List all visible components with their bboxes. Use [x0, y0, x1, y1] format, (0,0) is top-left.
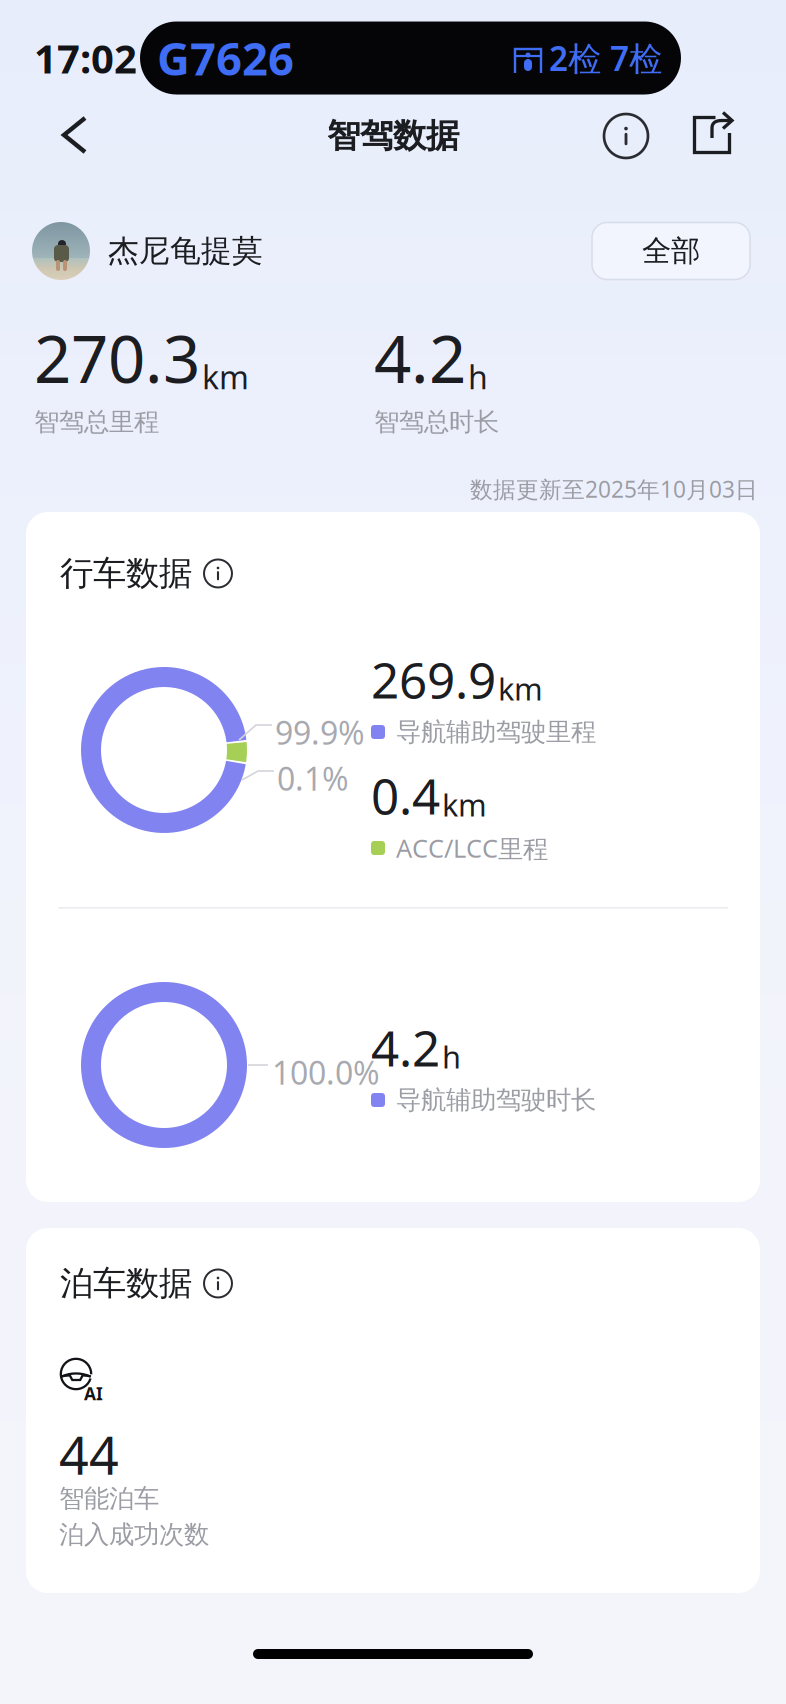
- staticText: 泊入成功次数: [59, 1519, 209, 1550]
- staticText: G7626: [157, 28, 294, 88]
- staticText: 导航辅助驾驶时长: [396, 1084, 596, 1115]
- button[interactable]: Back: [52, 113, 98, 157]
- staticText: 泊车数据: [60, 1263, 192, 1304]
- staticText: 99.9%: [275, 711, 365, 753]
- staticText: 导航辅助驾驶里程: [396, 716, 596, 747]
- button[interactable]: 全部: [592, 222, 750, 279]
- staticText: h: [468, 355, 488, 398]
- staticText: 100.0%: [272, 1051, 380, 1093]
- staticText: 智能泊车: [59, 1483, 159, 1514]
- staticText: 0.4: [371, 762, 440, 828]
- staticText: 智驾总里程: [34, 406, 159, 437]
- staticText: h: [442, 1036, 461, 1077]
- staticText: 杰尼龟提莫: [108, 232, 263, 270]
- staticText: AI: [84, 1382, 103, 1405]
- staticText: 数据更新至2025年10月03日: [470, 474, 758, 504]
- button[interactable]: About 行车数据: [204, 559, 232, 587]
- staticText: 4.2: [371, 1014, 440, 1080]
- staticText: 行车数据: [60, 553, 192, 594]
- staticText: 270.3: [34, 314, 200, 401]
- staticText: km: [498, 668, 543, 709]
- staticText: ACC/LCC里程: [396, 831, 548, 865]
- staticText: 17:02: [34, 31, 137, 84]
- staticText: 智驾总时长: [374, 406, 499, 437]
- staticText: km: [442, 784, 487, 825]
- staticText: 2检 7检: [549, 36, 662, 80]
- button[interactable]: Share: [691, 114, 735, 158]
- button[interactable]: About 泊车数据: [204, 1269, 232, 1297]
- staticText: km: [202, 355, 249, 398]
- staticText: 智驾数据: [327, 115, 459, 156]
- staticText: 4.2: [374, 314, 466, 401]
- button[interactable]: Info: [604, 114, 648, 158]
- staticText: 全部: [642, 233, 700, 269]
- staticText: 44: [59, 1420, 119, 1489]
- staticText: 0.1%: [277, 757, 349, 799]
- staticText: 269.9: [371, 646, 496, 712]
